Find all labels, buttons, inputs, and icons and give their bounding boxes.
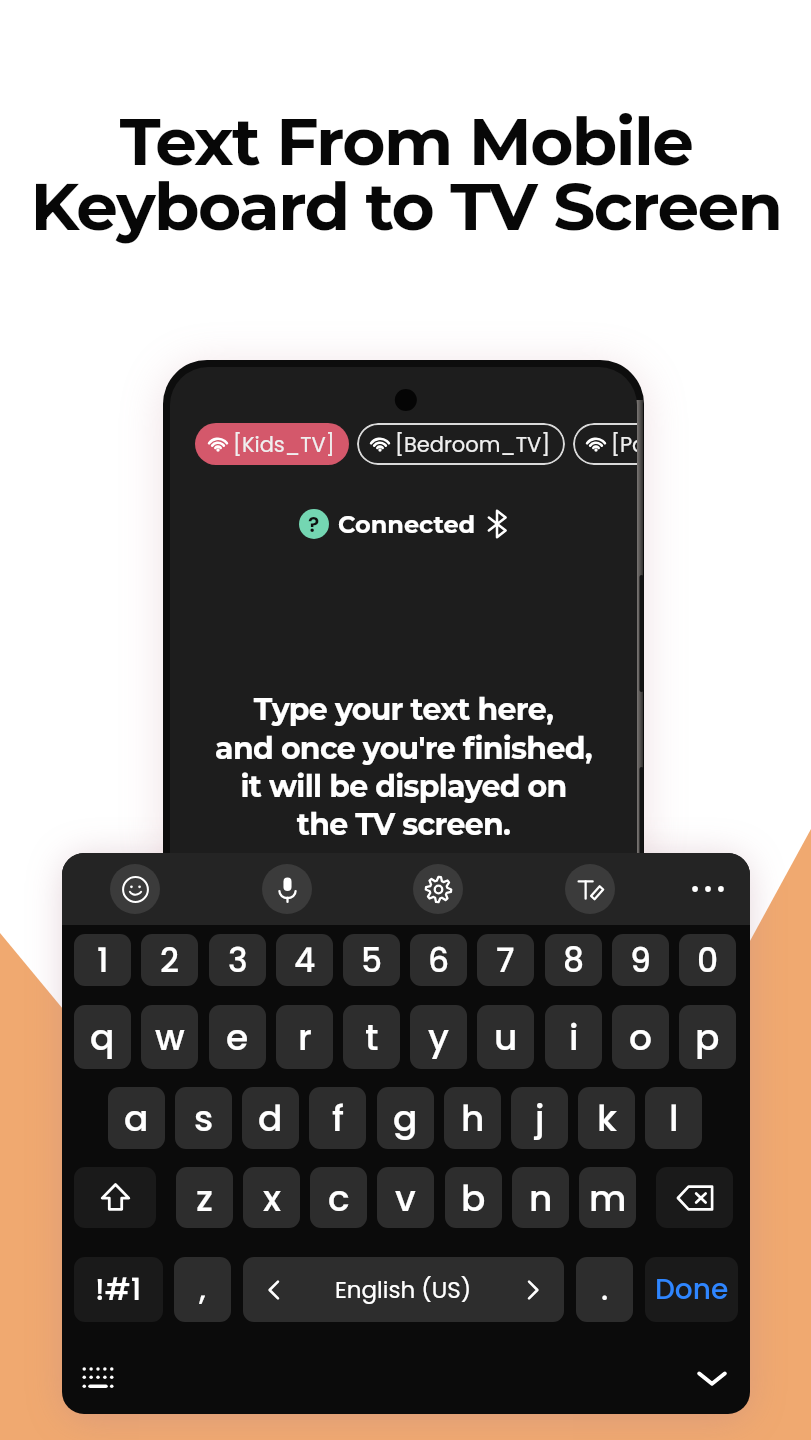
staticText: ? [308,510,320,539]
button[interactable]: t [343,1005,400,1069]
staticText: b [461,1173,486,1223]
staticText: 8 [563,937,585,983]
staticText: 5 [361,937,383,983]
button[interactable]: c [310,1167,367,1228]
staticText: Done [655,1270,729,1309]
button[interactable]: 3 [209,934,266,986]
staticText: t [365,1012,379,1062]
button[interactable]: 5 [343,934,400,986]
button[interactable]: [Pantry_TV] [573,423,637,465]
button[interactable]: More options [683,864,733,914]
button[interactable]: . [576,1257,633,1322]
button[interactable]: Emoji [110,864,160,914]
staticText: p [695,1012,720,1062]
staticText: i [569,1012,579,1062]
button[interactable]: q [74,1005,131,1069]
staticText: , [199,1269,206,1311]
button[interactable]: b [445,1167,502,1228]
staticText: l [669,1093,679,1143]
button[interactable]: English (US) [243,1257,564,1322]
staticText: 0 [697,937,719,983]
staticText: s [194,1093,214,1143]
button[interactable]: r [276,1005,333,1069]
staticText: Connected [338,510,476,539]
button[interactable]: 0 [679,934,736,986]
staticText: [Pantry_TV] [611,430,637,459]
staticText: Type your text here, and once you're fin… [215,691,592,842]
button[interactable]: h [444,1087,501,1149]
staticText: y [428,1012,449,1062]
button[interactable]: [Kids_TV] [195,423,349,465]
staticText: x [263,1173,281,1223]
staticText: English (US) [335,1274,472,1306]
button[interactable]: Done [645,1257,738,1322]
staticText: 3 [228,937,248,983]
button[interactable]: 2 [141,934,198,986]
button[interactable]: 9 [612,934,669,986]
button[interactable]: g [377,1087,434,1149]
staticText: [Kids_TV] [233,430,335,459]
button[interactable]: j [511,1087,568,1149]
button[interactable]: Voice input [262,864,312,914]
button[interactable]: p [679,1005,736,1069]
button[interactable]: w [141,1005,198,1069]
staticText: 7 [496,937,515,983]
button[interactable]: Backspace [656,1167,733,1228]
button[interactable]: i [545,1005,602,1069]
staticText: d [258,1093,283,1143]
staticText: 4 [294,937,316,983]
staticText: Text From Mobile Keyboard to TV Screen [30,101,782,246]
button[interactable]: z [176,1167,233,1228]
staticText: v [395,1173,416,1223]
staticText: a [124,1093,149,1143]
staticText: r [298,1012,312,1062]
staticText: q [90,1012,115,1062]
button[interactable]: x [243,1167,300,1228]
staticText: !#1 [95,1269,142,1311]
staticText: u [494,1012,518,1062]
staticText: c [328,1173,350,1223]
button[interactable]: n [512,1167,569,1228]
button[interactable]: l [645,1087,702,1149]
button[interactable]: f [309,1087,366,1149]
button[interactable]: d [242,1087,299,1149]
button[interactable]: 8 [545,934,602,986]
button[interactable]: 7 [477,934,534,986]
button[interactable]: v [377,1167,434,1228]
button[interactable]: [Bedroom_TV] [357,423,565,465]
staticText: w [155,1012,185,1062]
staticText: o [629,1012,652,1062]
staticText: h [461,1093,485,1143]
button[interactable]: 1 [74,934,131,986]
button[interactable]: !#1 [74,1257,163,1322]
button[interactable]: u [477,1005,534,1069]
staticText: m [589,1173,627,1223]
button[interactable]: Handwriting [565,864,615,914]
staticText: z [196,1173,213,1223]
staticText: j [535,1093,545,1143]
button[interactable]: y [410,1005,467,1069]
staticText: . [601,1269,609,1311]
button[interactable]: m [579,1167,636,1228]
staticText: n [529,1173,553,1223]
button[interactable]: o [612,1005,669,1069]
button[interactable]: s [175,1087,232,1149]
staticText: 9 [630,937,651,983]
button[interactable]: a [108,1087,165,1149]
button[interactable]: 6 [410,934,467,986]
button[interactable]: Settings [413,864,463,914]
button[interactable]: , [174,1257,231,1322]
staticText: 1 [97,937,109,983]
button[interactable]: Hide keyboard [690,1356,734,1400]
staticText: e [226,1012,249,1062]
button[interactable]: Keyboard layout [76,1356,120,1400]
button[interactable]: e [209,1005,266,1069]
staticText: k [597,1093,617,1143]
staticText: 6 [428,937,450,983]
staticText: [Bedroom_TV] [395,430,551,459]
staticText: f [332,1093,344,1143]
button[interactable]: k [578,1087,635,1149]
button[interactable]: 4 [276,934,333,986]
button[interactable]: Shift [74,1167,156,1228]
staticText: g [393,1093,418,1143]
